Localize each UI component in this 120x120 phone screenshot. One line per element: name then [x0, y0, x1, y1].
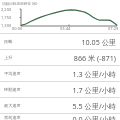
staticText: 07:29 [108, 26, 119, 31]
staticText: 當前速度 [4, 115, 21, 120]
button[interactable]: 距離 [0, 34, 120, 49]
staticText: 10.05 公里 [81, 37, 116, 47]
button[interactable]: 當前速度 [0, 114, 120, 120]
button[interactable]: 平均速度 [0, 66, 120, 81]
staticText: 5.5 公里/小時 [72, 101, 116, 111]
staticText: 03:44 [60, 26, 71, 31]
staticText: 866 米 (-871) [73, 53, 116, 63]
staticText: 1,750 [1, 15, 12, 20]
staticText: 平均速度 [4, 71, 21, 76]
staticText: 00:00 [12, 26, 23, 31]
button[interactable]: 上升 [0, 50, 120, 65]
button[interactable]: 最大速度 [0, 98, 120, 113]
staticText: 移動速度 [4, 87, 21, 92]
staticText: 0.0 公里/小時 [72, 114, 116, 120]
staticText: 1.7 公里/小時 [72, 85, 116, 95]
staticText: 活動記錄高度變化 (米) [2, 1, 38, 6]
staticText: 1,300 [1, 23, 12, 28]
button[interactable]: 移動速度 [0, 82, 120, 97]
staticText: 上升 [4, 55, 13, 60]
staticText: 距離 [4, 39, 13, 44]
staticText: 最大速度 [4, 103, 21, 108]
staticText: 1.3 公里/小時 [72, 69, 116, 79]
staticText: 2,200 [1, 7, 12, 12]
